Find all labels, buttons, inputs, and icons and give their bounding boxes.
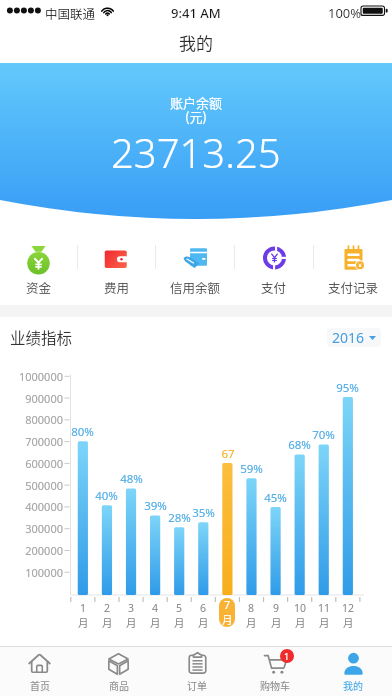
staticText: 月	[150, 615, 161, 630]
staticText: 月	[174, 615, 185, 630]
button[interactable]: 1	[236, 647, 314, 696]
staticText: 45%	[264, 490, 287, 506]
staticText: 67	[221, 446, 235, 462]
staticText: 80%	[71, 424, 94, 440]
staticText: 1	[80, 601, 87, 615]
staticText: 200000	[25, 543, 63, 558]
staticText: 28%	[168, 510, 191, 526]
staticText: 2016	[332, 328, 365, 347]
staticText: 中国联通	[45, 4, 96, 22]
staticText: 600000	[25, 456, 63, 471]
staticText: 月	[78, 615, 89, 630]
staticText: 首页	[30, 678, 50, 692]
staticText: 我的	[343, 678, 363, 692]
staticText: 48%	[120, 471, 143, 487]
staticText: 月	[198, 615, 209, 630]
staticText: 40%	[95, 488, 118, 504]
staticText: 业绩指标	[10, 326, 73, 348]
staticText: 月	[246, 615, 257, 630]
button[interactable]: 首页	[0, 647, 79, 696]
staticText: 9:41 AM	[171, 4, 221, 22]
staticText: 70%	[312, 427, 335, 443]
staticText: 100%	[328, 4, 362, 22]
staticText: 资金	[26, 278, 52, 296]
staticText: 2	[104, 601, 111, 615]
staticText: 4	[152, 601, 159, 615]
staticText: 39%	[144, 498, 167, 514]
staticText: 订单	[187, 678, 207, 692]
staticText: 23713.25	[111, 125, 281, 179]
staticText: (元)	[185, 107, 207, 126]
staticText: 900000	[25, 391, 63, 406]
staticText: 月	[271, 615, 282, 630]
staticText: 10	[294, 601, 307, 615]
staticText: 11	[318, 601, 331, 615]
staticText: 账户余额	[170, 93, 223, 112]
staticText: 5	[176, 601, 183, 615]
button[interactable]: 商品	[79, 647, 158, 696]
staticText: 12	[342, 601, 355, 615]
staticText: 月	[343, 615, 354, 630]
staticText: 1	[284, 650, 290, 662]
staticText: 300000	[25, 521, 63, 536]
staticText: 95%	[336, 380, 359, 396]
staticText: 800000	[25, 412, 63, 427]
staticText: 59%	[240, 461, 263, 477]
button[interactable]: 2016	[327, 328, 381, 347]
button[interactable]: 支付记录	[314, 245, 392, 300]
staticText: 500000	[25, 478, 63, 493]
staticText: 7	[224, 598, 231, 612]
staticText: 费用	[104, 278, 130, 296]
staticText: 商品	[109, 678, 129, 692]
staticText: 支付记录	[328, 278, 379, 296]
staticText: 信用余额	[170, 278, 221, 296]
staticText: 3	[128, 601, 135, 615]
button[interactable]: 7	[219, 598, 235, 627]
button[interactable]: 支付	[235, 245, 313, 300]
staticText: 我的	[179, 30, 213, 55]
staticText: 1000000	[18, 369, 63, 384]
staticText: 100000	[25, 565, 63, 580]
staticText: 支付	[261, 278, 287, 296]
staticText: 8	[248, 601, 255, 615]
staticText: 35%	[192, 505, 215, 521]
staticText: 68%	[288, 437, 311, 453]
button[interactable]: 我的	[314, 647, 392, 696]
staticText: 400000	[25, 499, 63, 514]
staticText: 购物车	[260, 678, 290, 692]
button[interactable]: 资金	[0, 245, 77, 300]
button[interactable]: 费用	[78, 245, 155, 300]
button[interactable]: 订单	[158, 647, 236, 696]
staticText: 9	[273, 601, 280, 615]
staticText: 月	[222, 612, 233, 627]
staticText: 月	[126, 615, 137, 630]
staticText: 700000	[25, 434, 63, 449]
button[interactable]: 信用余额	[156, 245, 234, 300]
staticText: 月	[295, 615, 306, 630]
staticText: 月	[102, 615, 113, 630]
staticText: 月	[319, 615, 330, 630]
staticText: 6	[200, 601, 207, 615]
